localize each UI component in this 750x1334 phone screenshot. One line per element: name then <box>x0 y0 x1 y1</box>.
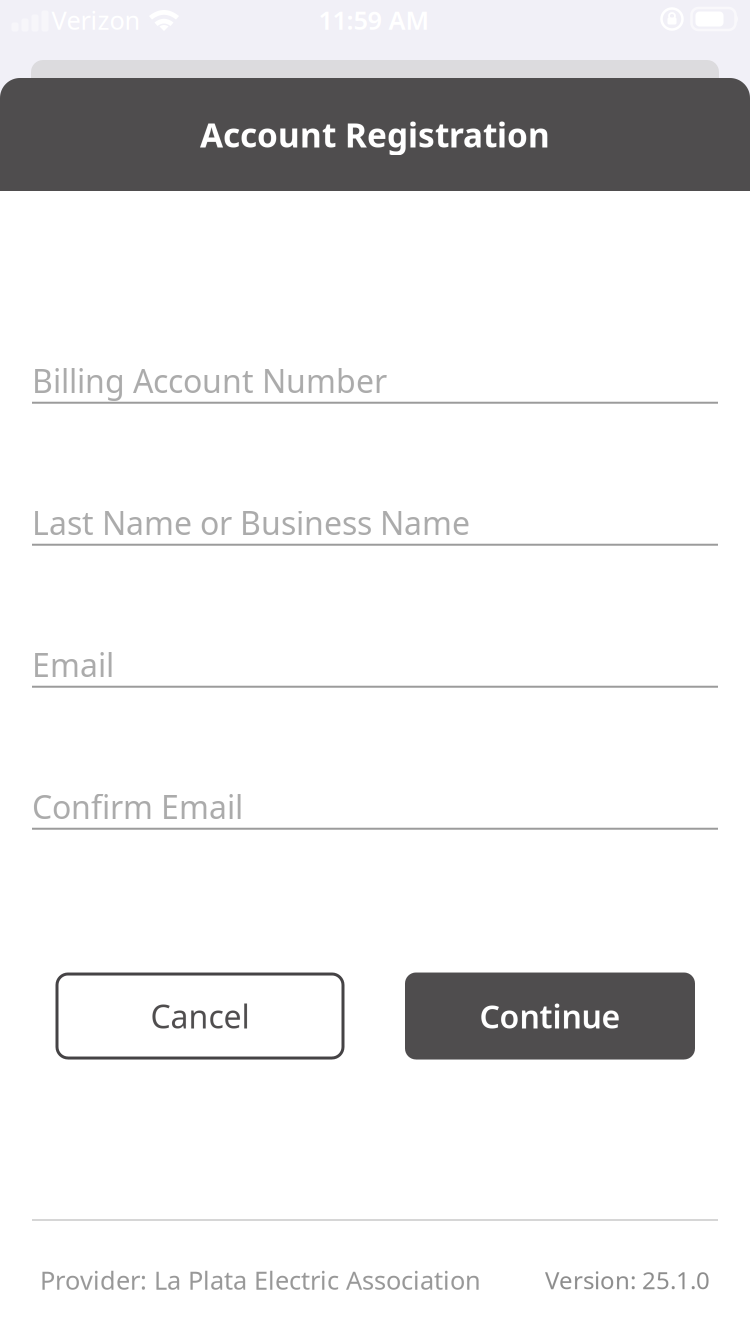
button[interactable]: Email <box>32 643 718 688</box>
staticText: 11:59 AM <box>318 3 429 37</box>
button[interactable]: Confirm Email <box>32 785 718 830</box>
staticText: Continue <box>479 995 620 1037</box>
button[interactable]: Last Name or Business Name <box>32 501 718 546</box>
staticText: Confirm Email <box>32 785 243 828</box>
staticText: Cancel <box>150 995 249 1037</box>
button[interactable]: Cancel <box>55 972 344 1059</box>
staticText: Verizon <box>51 3 140 37</box>
staticText: Provider: La Plata Electric Association <box>40 1263 481 1297</box>
staticText: Account Registration <box>200 112 550 157</box>
button[interactable]: Continue <box>405 972 695 1059</box>
staticText: Version: 25.1.0 <box>545 1264 710 1296</box>
staticText: Billing Account Number <box>32 359 387 402</box>
button[interactable]: Billing Account Number <box>32 359 718 404</box>
staticText: Last Name or Business Name <box>32 501 470 544</box>
staticText: Email <box>32 643 114 686</box>
